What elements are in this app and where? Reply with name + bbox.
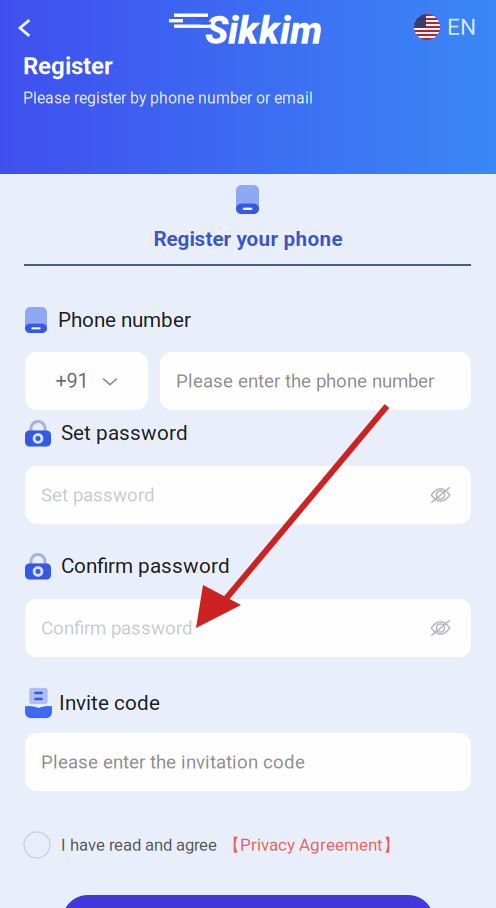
staticText: Register your phone [153,227,342,251]
staticText: Set password [41,484,155,506]
button[interactable]: Language English [414,11,482,43]
staticText: +91 [55,369,88,393]
staticText: Please enter the invitation code [41,751,305,773]
button[interactable]: Confirm password [25,599,471,657]
staticText: Please enter the phone number [176,370,434,392]
staticText: Sikkim [205,8,322,53]
staticText: Set password [61,421,188,445]
button[interactable]: Please enter the phone number [160,352,471,410]
staticText: EN [447,14,476,40]
button[interactable]: Register [62,895,434,908]
button[interactable]: Back [6,9,44,47]
staticText: Confirm password [61,554,230,578]
button[interactable]: Agree to terms [24,832,50,858]
staticText: Register [23,52,113,80]
staticText: 【Privacy Agreement】 [223,834,400,856]
staticText: Phone number [58,308,191,332]
staticText: Please register by phone number or email [23,89,313,107]
button[interactable]: +91 [25,352,148,410]
button[interactable]: 【Privacy Agreement】 [217,834,400,856]
staticText: Confirm password [41,617,193,639]
staticText: Invite code [59,691,160,715]
button[interactable]: Please enter the invitation code [25,733,471,791]
button[interactable]: Set password [25,466,471,524]
staticText: I have read and agree [61,835,217,855]
